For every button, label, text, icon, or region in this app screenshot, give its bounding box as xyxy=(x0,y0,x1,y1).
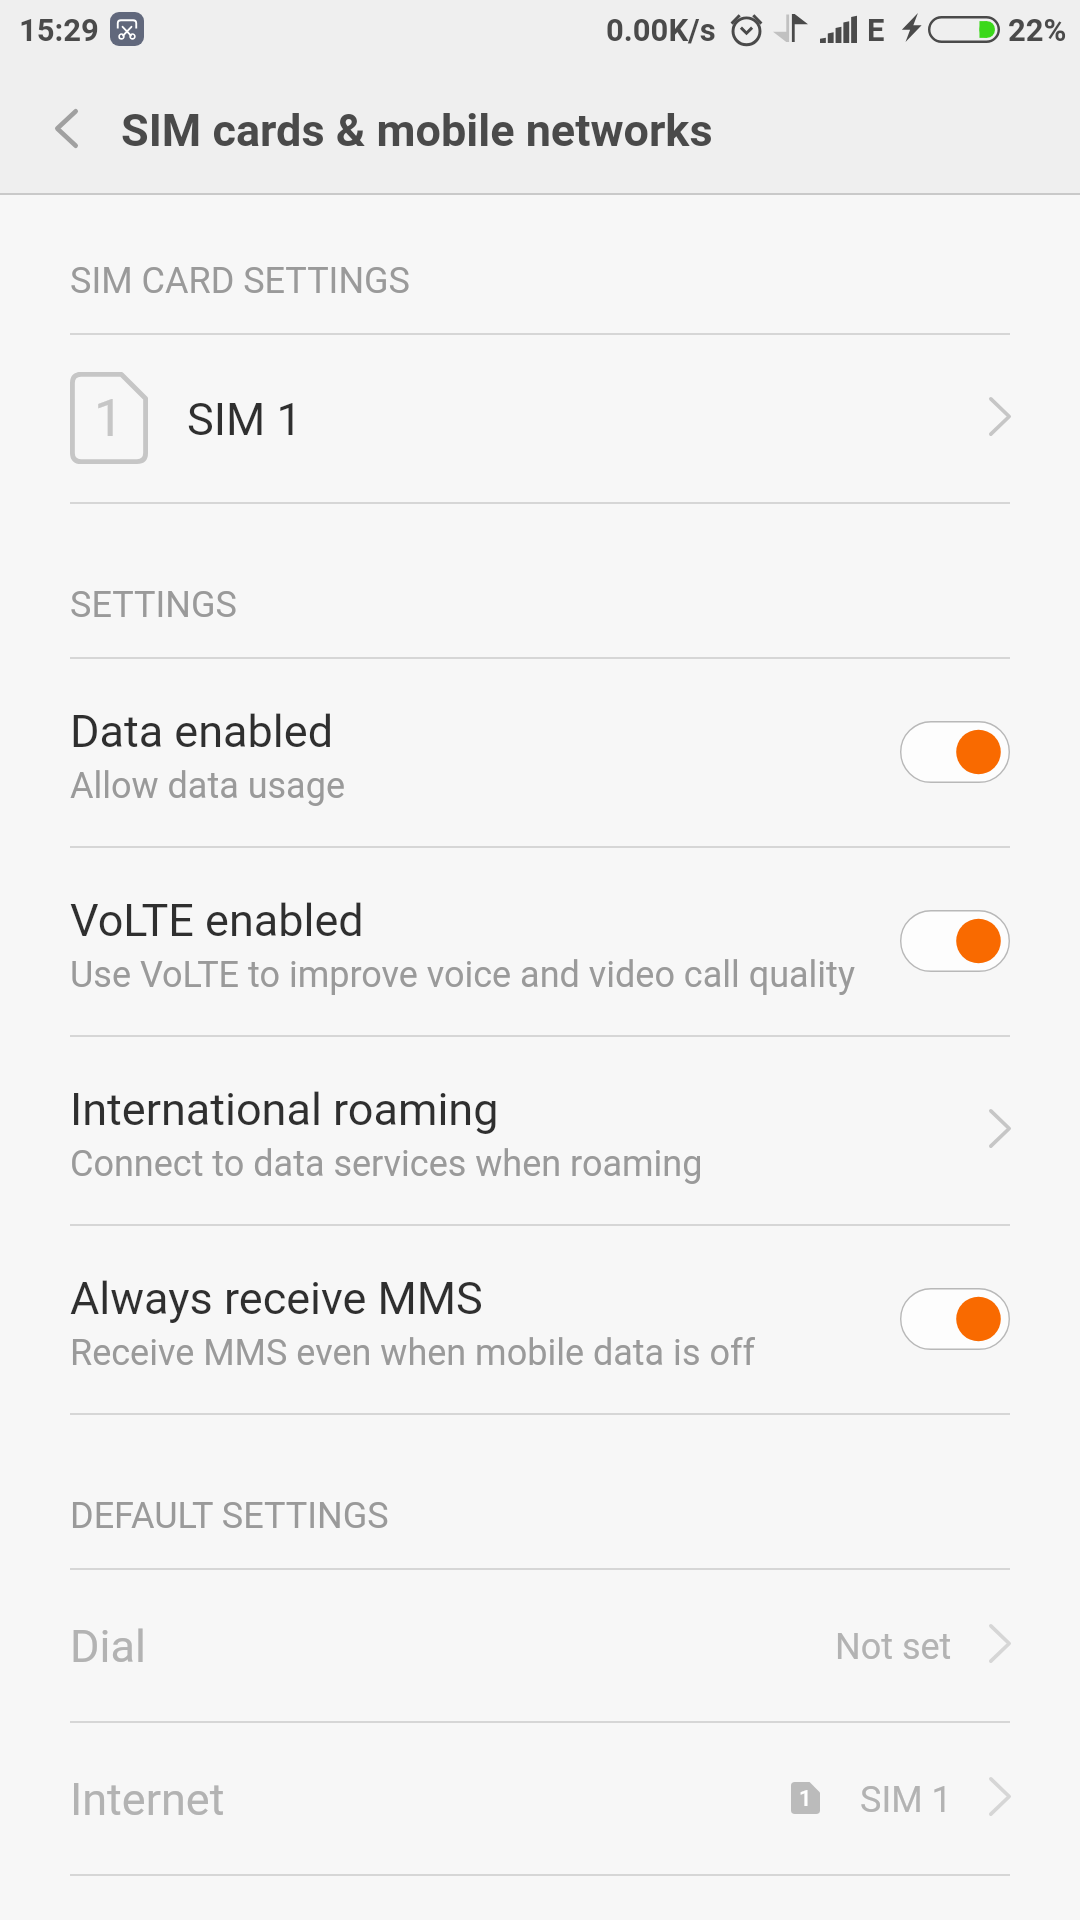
staticText: Always receive MMS xyxy=(70,1272,483,1325)
button[interactable]: International roaming xyxy=(0,1035,1080,1224)
staticText: Connect to data services when roaming xyxy=(70,1143,703,1185)
staticText: Use VoLTE to improve voice and video cal… xyxy=(70,954,855,996)
staticText: Receive MMS even when mobile data is off xyxy=(70,1332,755,1374)
staticText: SIM 1 xyxy=(860,1779,952,1821)
button[interactable]: Back xyxy=(30,92,102,164)
button[interactable]: Internet xyxy=(0,1721,1080,1874)
button[interactable]: 1 xyxy=(0,333,1080,502)
staticText: International roaming xyxy=(70,1083,499,1136)
button[interactable]: Screenshot tool xyxy=(110,12,144,46)
staticText: Dial xyxy=(70,1620,146,1673)
staticText: SETTINGS xyxy=(70,584,237,626)
staticText: 1 xyxy=(94,388,124,449)
staticText: SIM 1 xyxy=(187,393,302,446)
staticText: DEFAULT SETTINGS xyxy=(70,1495,389,1537)
staticText: Allow data usage xyxy=(70,765,345,807)
staticText: 0.00K/s xyxy=(606,12,716,48)
staticText: E xyxy=(867,12,885,48)
staticText: 22% xyxy=(1008,12,1067,48)
button[interactable]: VoLTE enabled, on xyxy=(900,910,1010,972)
staticText: 1 xyxy=(799,1786,812,1812)
button[interactable]: Data enabled, on xyxy=(900,721,1010,783)
button[interactable]: Data enabled xyxy=(0,657,1080,846)
staticText: Not set xyxy=(835,1626,952,1668)
button[interactable]: Always receive MMS, on xyxy=(900,1288,1010,1350)
staticText: Data enabled xyxy=(70,705,334,758)
staticText: 15:29 xyxy=(19,12,99,48)
staticText: Internet xyxy=(70,1773,225,1826)
button[interactable]: Always receive MMS xyxy=(0,1224,1080,1413)
button[interactable]: Dial xyxy=(0,1568,1080,1721)
staticText: SIM CARD SETTINGS xyxy=(70,260,410,302)
staticText: SIM cards & mobile networks xyxy=(121,104,713,157)
staticText: VoLTE enabled xyxy=(70,894,364,947)
button[interactable]: VoLTE enabled xyxy=(0,846,1080,1035)
